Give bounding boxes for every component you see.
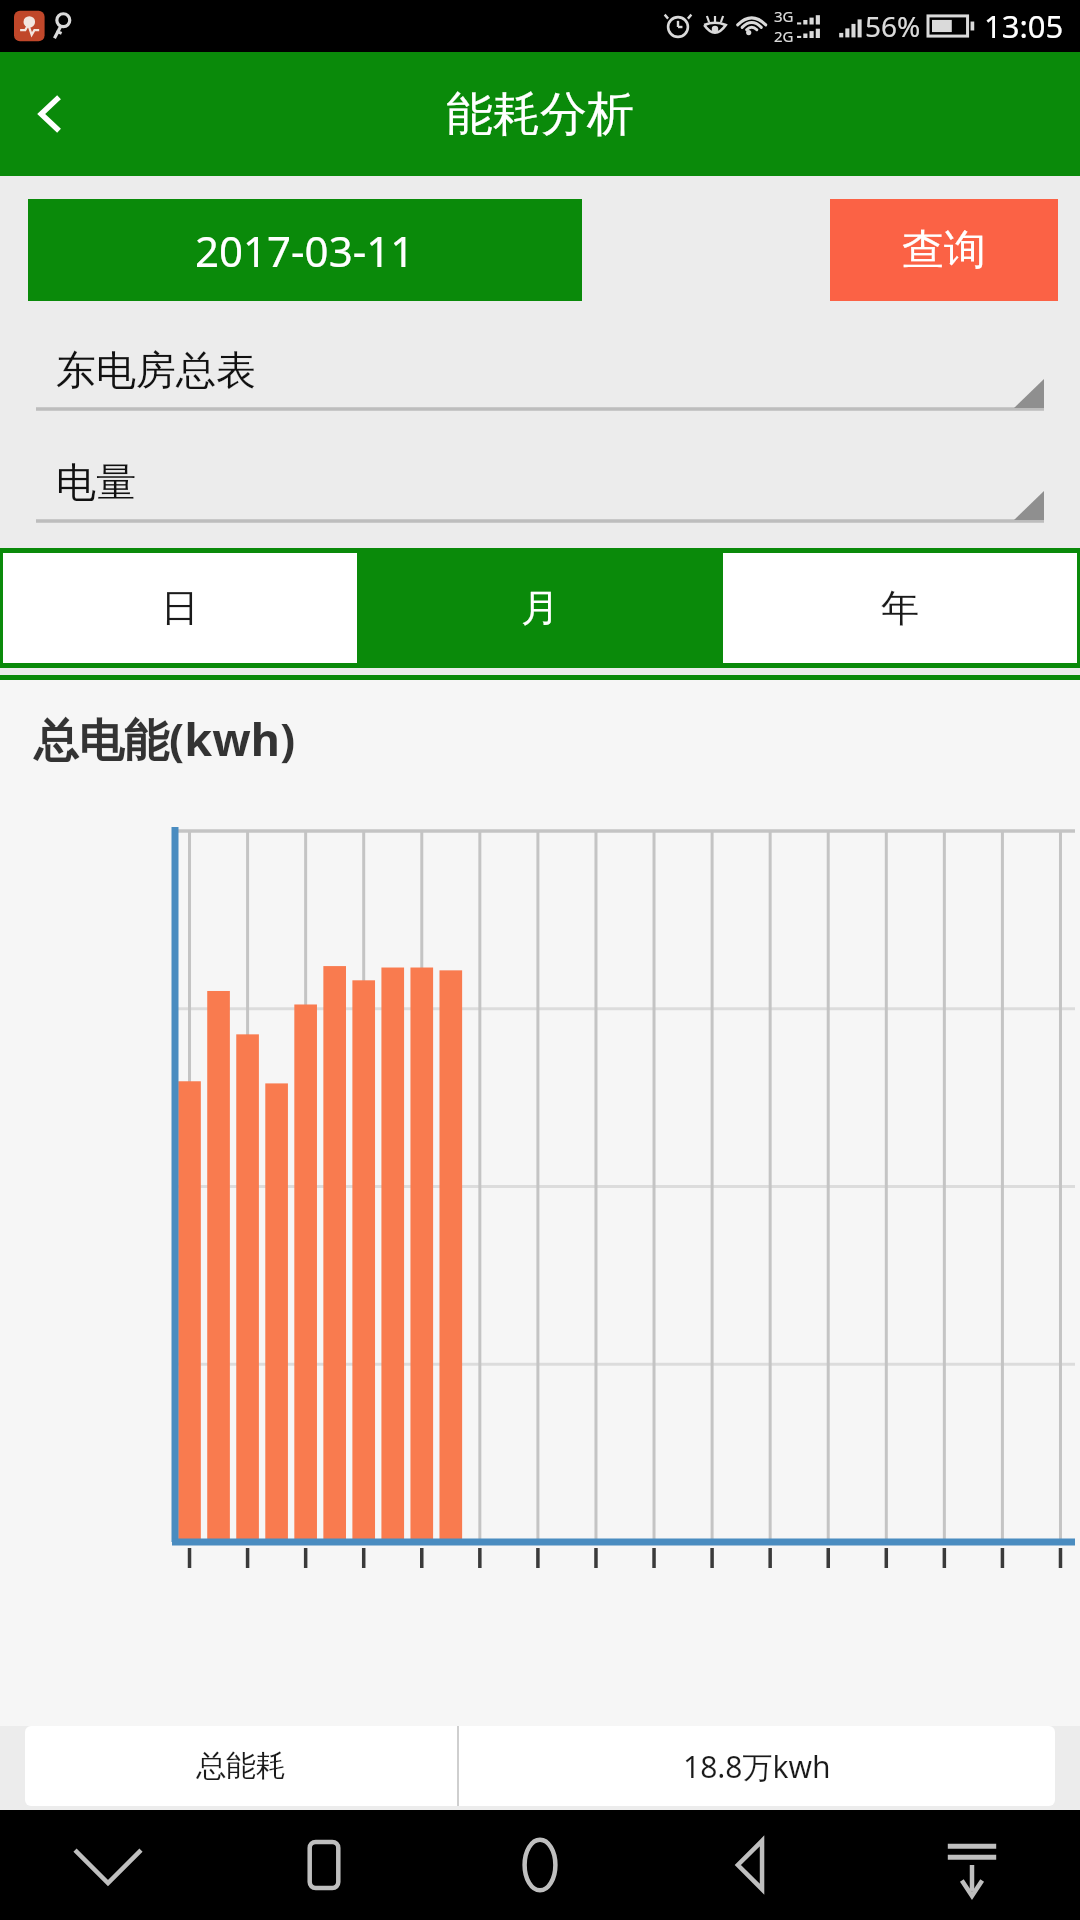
button[interactable]: Home	[432, 1810, 648, 1920]
button[interactable]: 2017-03-11	[28, 199, 582, 301]
staticText: 东电房总表	[56, 345, 256, 395]
button[interactable]: Recents	[216, 1810, 432, 1920]
staticText: 总电能(kwh)	[34, 708, 296, 769]
button[interactable]: Back	[0, 52, 100, 176]
staticText: 3G	[774, 6, 794, 26]
staticText: 能耗分析	[446, 85, 634, 144]
button[interactable]: 月	[363, 553, 717, 663]
button[interactable]: Hide keyboard	[0, 1810, 216, 1920]
staticText: 2G	[774, 26, 794, 46]
button[interactable]: 电量	[36, 451, 1044, 527]
button[interactable]: 查询	[830, 199, 1058, 301]
staticText: 总能耗	[196, 1747, 286, 1785]
staticText: 电量	[56, 457, 136, 507]
button[interactable]: 年	[723, 553, 1077, 663]
button[interactable]: Split screen	[864, 1810, 1080, 1920]
staticText: 查询	[902, 224, 986, 277]
staticText: 56%	[865, 7, 921, 45]
staticText: 日	[161, 584, 199, 632]
button[interactable]: 总能耗	[25, 1726, 1055, 1806]
button[interactable]: Back	[648, 1810, 864, 1920]
staticText: 2017-03-11	[195, 222, 415, 279]
staticText: 月	[521, 584, 559, 632]
staticText: 年	[881, 584, 919, 632]
button[interactable]: 日	[3, 553, 357, 663]
button[interactable]: 东电房总表	[36, 339, 1044, 415]
staticText: 13:05	[984, 5, 1064, 47]
staticText: 18.8万kwh	[683, 1746, 831, 1787]
